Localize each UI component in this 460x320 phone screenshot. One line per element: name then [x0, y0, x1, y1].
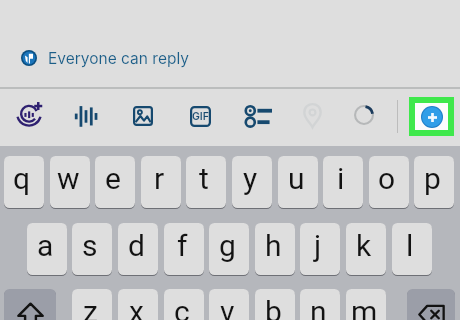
staticText: a: [37, 228, 54, 263]
staticText: x: [129, 294, 144, 320]
staticText: j: [314, 228, 322, 263]
button[interactable]: z: [72, 289, 112, 320]
staticText: m: [351, 294, 378, 320]
staticText: i: [337, 161, 345, 196]
button[interactable]: w: [50, 156, 90, 208]
button[interactable]: k: [346, 223, 386, 275]
button[interactable]: h: [255, 223, 295, 275]
button[interactable]: i: [323, 156, 363, 208]
button[interactable]: f: [164, 223, 204, 275]
staticText: t: [199, 161, 209, 196]
button[interactable]: Location: [304, 102, 321, 128]
button[interactable]: b: [255, 289, 295, 320]
staticText: p: [424, 161, 441, 196]
staticText: u: [288, 161, 305, 196]
staticText: z: [83, 294, 98, 320]
button[interactable]: Post: [415, 103, 448, 130]
staticText: s: [82, 228, 98, 263]
button[interactable]: n: [300, 289, 340, 320]
staticText: y: [243, 161, 258, 196]
staticText: v: [220, 294, 235, 320]
button[interactable]: t: [186, 156, 226, 208]
button[interactable]: q: [4, 156, 44, 208]
staticText: n: [310, 294, 327, 320]
staticText: o: [378, 161, 396, 196]
button[interactable]: d: [118, 223, 158, 275]
button[interactable]: Voice: [75, 105, 97, 127]
button[interactable]: u: [278, 156, 318, 208]
button[interactable]: p: [414, 156, 454, 208]
button[interactable]: x: [118, 289, 158, 320]
staticText: k: [356, 228, 372, 263]
button[interactable]: v: [209, 289, 249, 320]
staticText: w: [57, 161, 80, 196]
staticText: h: [265, 228, 282, 263]
button[interactable]: l: [392, 223, 432, 275]
staticText: Everyone can reply: [48, 49, 189, 68]
button[interactable]: GIF: [190, 106, 211, 127]
button[interactable]: Photo: [133, 106, 153, 126]
staticText: d: [128, 228, 145, 263]
staticText: r: [154, 161, 165, 196]
staticText: e: [105, 161, 121, 196]
button[interactable]: m: [346, 289, 386, 320]
button[interactable]: Poll: [245, 106, 272, 127]
button[interactable]: g: [209, 223, 249, 275]
staticText: c: [174, 294, 190, 320]
button[interactable]: r: [141, 156, 181, 208]
staticText: g: [219, 228, 236, 263]
button[interactable]: o: [369, 156, 409, 208]
staticText: b: [265, 294, 282, 320]
button[interactable]: j: [300, 223, 340, 275]
button[interactable]: c: [164, 289, 204, 320]
staticText: GIF: [192, 110, 209, 123]
button[interactable]: Add sticker: [18, 101, 43, 129]
button[interactable]: Everyone can reply: [0, 44, 460, 72]
button[interactable]: a: [27, 223, 67, 275]
staticText: f: [177, 228, 188, 263]
staticText: l: [406, 228, 414, 263]
button[interactable]: y: [232, 156, 272, 208]
button[interactable]: Shift: [4, 289, 56, 320]
button[interactable]: e: [95, 156, 135, 208]
staticText: q: [13, 161, 31, 196]
button[interactable]: s: [72, 223, 112, 275]
button[interactable]: Backspace: [407, 289, 455, 320]
